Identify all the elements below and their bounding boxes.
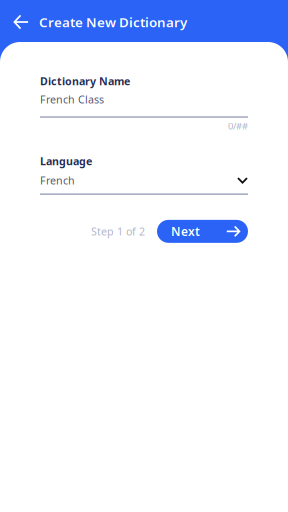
staticText: Step 1 of 2 [91,224,145,238]
button[interactable]: Next [157,220,248,243]
button[interactable]: French [40,173,248,187]
staticText: 0/## [228,120,248,132]
staticText: Language [40,154,92,168]
button[interactable]: French Class [40,92,248,106]
staticText: Dictionary Name [40,74,130,88]
staticText: French [40,173,75,187]
staticText: Next [171,223,200,239]
staticText: French Class [40,92,104,106]
button[interactable]: Back [10,7,32,37]
staticText: Create New Dictionary [39,13,187,31]
